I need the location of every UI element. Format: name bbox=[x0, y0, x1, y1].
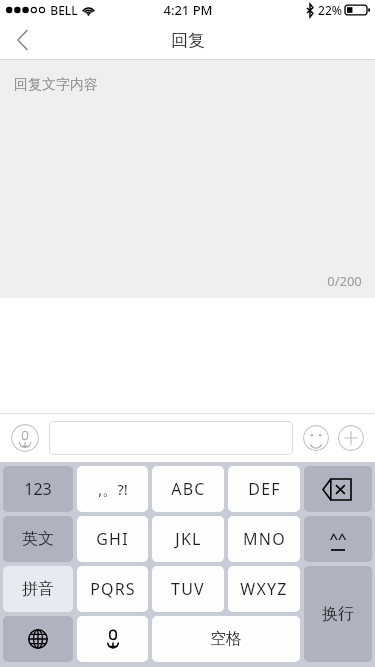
button[interactable]: GHI bbox=[77, 516, 148, 562]
staticText: ABC bbox=[171, 478, 206, 500]
button[interactable]: Voice input bbox=[11, 424, 39, 452]
button[interactable]: Switch language bbox=[3, 616, 73, 662]
button[interactable]: DEF bbox=[228, 466, 300, 512]
staticText: BELL bbox=[50, 2, 78, 18]
button[interactable]: WXYZ bbox=[228, 566, 300, 612]
button[interactable]: TUV bbox=[152, 566, 224, 612]
other: Delete bbox=[323, 479, 353, 500]
staticText: 拼音 bbox=[22, 579, 54, 599]
button[interactable]: 空格 bbox=[152, 616, 300, 662]
button[interactable]: More bbox=[338, 425, 364, 451]
staticText: DEF bbox=[248, 478, 281, 500]
staticText: MNO bbox=[243, 528, 286, 550]
staticText: 回复 bbox=[171, 30, 205, 51]
staticText: 换行 bbox=[322, 604, 354, 624]
staticText: GHI bbox=[96, 528, 129, 550]
staticText: 123 bbox=[24, 478, 52, 500]
button[interactable]: PQRS bbox=[77, 566, 148, 612]
button[interactable]: 拼音 bbox=[3, 566, 73, 612]
button[interactable]: JKL bbox=[152, 516, 224, 562]
other: Voice bbox=[106, 628, 120, 650]
button[interactable]: ,。?! bbox=[77, 466, 148, 512]
button[interactable]: Delete bbox=[304, 466, 372, 512]
button[interactable]: 123 bbox=[3, 466, 73, 512]
staticText: PQRS bbox=[90, 578, 136, 600]
other: Switch language bbox=[28, 629, 48, 649]
staticText: 空格 bbox=[210, 629, 242, 649]
staticText: ^^ bbox=[329, 528, 347, 548]
button[interactable]: 换行 bbox=[304, 566, 372, 662]
staticText: 4:21 PM bbox=[163, 1, 213, 19]
button[interactable]: MNO bbox=[228, 516, 300, 562]
button[interactable]: 回复文字内容 bbox=[0, 60, 375, 298]
staticText: TUV bbox=[171, 578, 205, 600]
button[interactable]: ^^ bbox=[304, 516, 372, 562]
staticText: 回复文字内容 bbox=[14, 76, 98, 94]
button[interactable]: 英文 bbox=[3, 516, 73, 562]
staticText: 英文 bbox=[22, 529, 54, 549]
button[interactable] bbox=[49, 421, 293, 455]
button[interactable]: Voice bbox=[77, 616, 148, 662]
staticText: JKL bbox=[175, 528, 202, 550]
button[interactable]: Emoji bbox=[303, 425, 329, 451]
staticText: WXYZ bbox=[240, 578, 288, 600]
staticText: ,。?! bbox=[98, 479, 128, 499]
button[interactable]: Back bbox=[0, 20, 44, 60]
staticText: 22% bbox=[318, 2, 342, 18]
staticText: 0/200 bbox=[327, 272, 362, 290]
button[interactable]: ABC bbox=[152, 466, 224, 512]
